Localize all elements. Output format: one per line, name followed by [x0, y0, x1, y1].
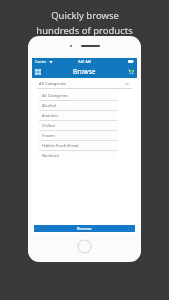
staticText: Quickly browse [51, 9, 119, 22]
staticText: Hallets Fresh Bread [42, 143, 79, 148]
staticText: Frozen [42, 133, 55, 138]
button[interactable]: Cart [126, 67, 135, 76]
staticText: Chilled [42, 123, 55, 128]
button[interactable]: Hallets Fresh Bread [39, 141, 117, 150]
staticText: Nonfood [42, 153, 59, 158]
staticText: All Categories [42, 93, 68, 98]
staticText: All Categories [39, 81, 67, 87]
staticText: 9:41 AM [78, 59, 91, 64]
staticText: hundreds of products [36, 24, 133, 37]
staticText: Ambient [42, 113, 58, 118]
button[interactable]: Browse [34, 225, 135, 232]
button[interactable]: Menu [34, 68, 42, 76]
button[interactable]: Ambient [39, 111, 117, 120]
button[interactable]: Chilled [39, 121, 117, 130]
staticText: Browse [77, 226, 92, 232]
staticText: Alcohol [42, 103, 56, 108]
button[interactable]: All Categories [37, 80, 132, 88]
button[interactable]: Frozen [39, 131, 117, 140]
button[interactable]: All Categories [39, 91, 117, 100]
button[interactable]: Nonfood [39, 151, 117, 160]
button[interactable]: Home [77, 239, 92, 254]
button[interactable]: Alcohol [39, 101, 117, 110]
staticText: Browse [73, 67, 96, 76]
staticText: Carrier [35, 59, 47, 64]
